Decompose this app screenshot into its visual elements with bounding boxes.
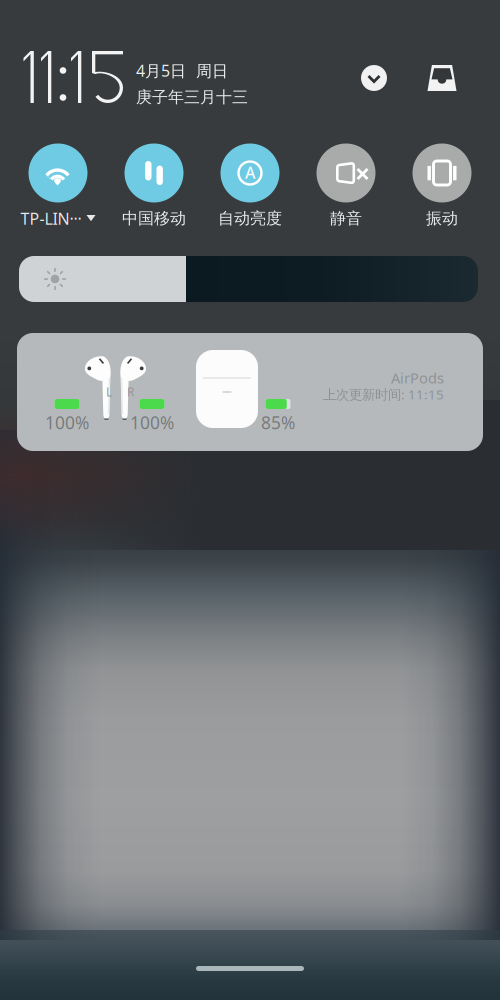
staticText: R xyxy=(127,384,134,400)
staticText: 4月5日 周日 xyxy=(136,60,228,81)
button[interactable]: 中国移动 xyxy=(106,141,202,231)
staticText: A xyxy=(245,162,255,183)
button[interactable]: Collapse xyxy=(354,58,394,98)
staticText: 85% xyxy=(261,411,295,434)
button[interactable]: TP-LIN··· xyxy=(10,141,106,231)
staticText: 静音 xyxy=(330,209,362,228)
staticText: 振动 xyxy=(426,209,458,228)
staticText: L xyxy=(106,384,112,400)
button[interactable]: 振动 xyxy=(394,141,490,231)
staticText: AirPods xyxy=(391,368,444,387)
staticText: 自动亮度 xyxy=(218,209,282,228)
staticText: 上次更新时间: 11:15 xyxy=(323,385,444,403)
staticText: 100% xyxy=(45,411,89,434)
staticText: 中国移动 xyxy=(122,209,186,228)
button[interactable] xyxy=(19,256,478,302)
button[interactable]: A xyxy=(202,141,298,231)
staticText: 100% xyxy=(130,411,174,434)
button[interactable]: 静音 xyxy=(298,141,394,231)
staticText: 庚子年三月十三 xyxy=(136,87,248,107)
button[interactable]: Notifications xyxy=(422,58,462,98)
staticText: TP-LIN··· xyxy=(20,208,81,229)
